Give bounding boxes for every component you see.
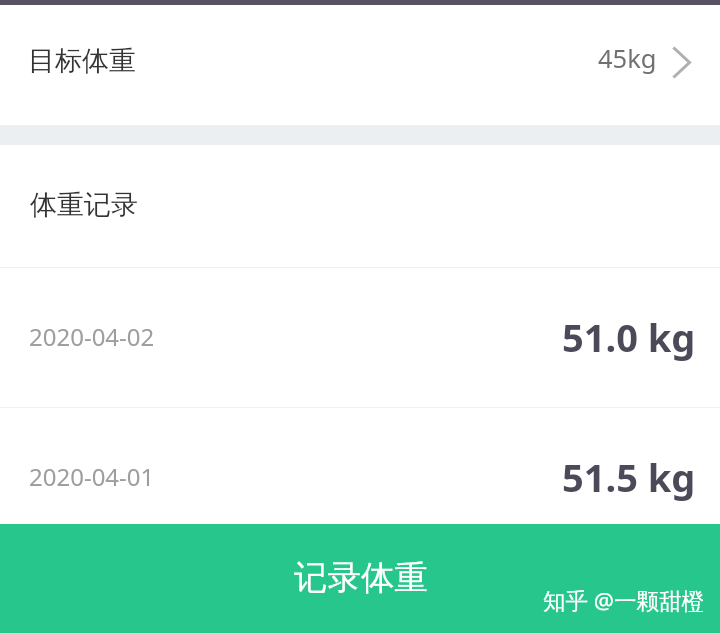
button[interactable]: 记录体重 xyxy=(0,524,720,633)
staticText: 2020-04-02 xyxy=(29,320,155,353)
button[interactable]: 2020-04-02 xyxy=(0,268,720,407)
staticText: 45kg xyxy=(598,41,657,76)
staticText: 记录体重 xyxy=(294,557,428,599)
staticText: 51.0 kg xyxy=(562,311,696,363)
staticText: 体重记录 xyxy=(30,188,138,222)
other: Open target weight xyxy=(673,47,691,78)
staticText: 2020-04-01 xyxy=(29,460,155,493)
staticText: 目标体重 xyxy=(28,44,136,78)
staticText: 知乎 @一颗甜橙 xyxy=(543,585,705,616)
staticText: 51.5 kg xyxy=(562,451,696,503)
button[interactable]: 2020-04-01 xyxy=(0,408,720,547)
button[interactable]: 目标体重 xyxy=(0,5,720,125)
